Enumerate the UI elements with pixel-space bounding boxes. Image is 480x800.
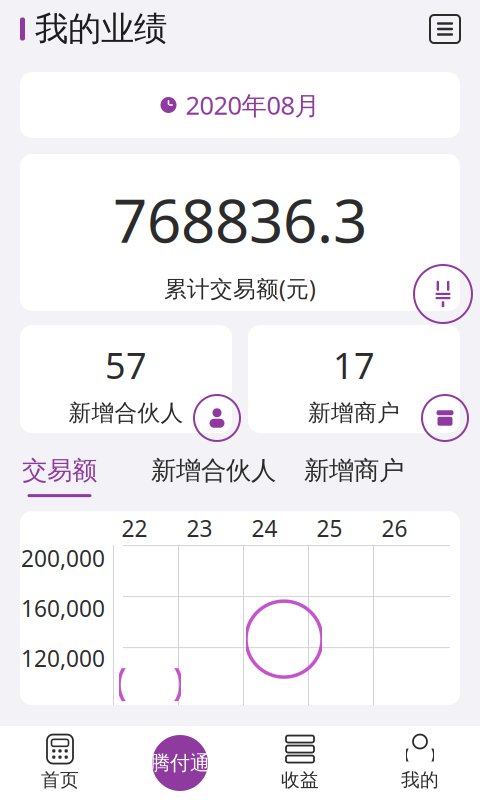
staticText: 22 xyxy=(121,513,147,543)
staticText: 腾付通 xyxy=(150,751,210,775)
button[interactable]: 我的 xyxy=(360,726,480,800)
button[interactable]: 收益 xyxy=(240,726,360,800)
button[interactable]: 新增商户 xyxy=(304,455,404,497)
staticText: 23 xyxy=(186,513,212,543)
button[interactable]: 腾付通 xyxy=(120,726,240,800)
staticText: 新增商户 xyxy=(308,399,400,427)
staticText: 120,000 xyxy=(21,643,105,673)
staticText: 新增合伙人 xyxy=(68,399,183,427)
staticText: 我的 xyxy=(401,768,439,791)
button[interactable]: 交易额 xyxy=(22,455,97,497)
button[interactable]: 首页 xyxy=(0,726,120,800)
button[interactable]: 17 xyxy=(248,325,460,433)
staticText: 160,000 xyxy=(21,593,105,623)
staticText: 我的业绩 xyxy=(35,8,167,49)
staticText: 768836.3 xyxy=(113,180,367,259)
button[interactable]: 2020年08月 xyxy=(20,72,460,138)
button[interactable]: Menu xyxy=(430,15,460,43)
staticText: 新增商户 xyxy=(304,455,404,486)
staticText: 24 xyxy=(251,513,277,543)
staticText: 交易额 xyxy=(22,455,97,486)
staticText: 17 xyxy=(333,341,375,389)
staticText: 57 xyxy=(105,341,147,389)
staticText: 收益 xyxy=(281,768,319,791)
button[interactable]: 新增合伙人 xyxy=(151,455,276,497)
staticText: 26 xyxy=(381,513,407,543)
staticText: 200,000 xyxy=(21,543,105,573)
staticText: 25 xyxy=(316,513,342,543)
button[interactable]: 57 xyxy=(20,325,232,433)
staticText: 累计交易额(元) xyxy=(164,273,316,303)
staticText: 新增合伙人 xyxy=(151,455,276,486)
staticText: 2020年08月 xyxy=(185,88,319,122)
staticText: 首页 xyxy=(41,768,79,791)
